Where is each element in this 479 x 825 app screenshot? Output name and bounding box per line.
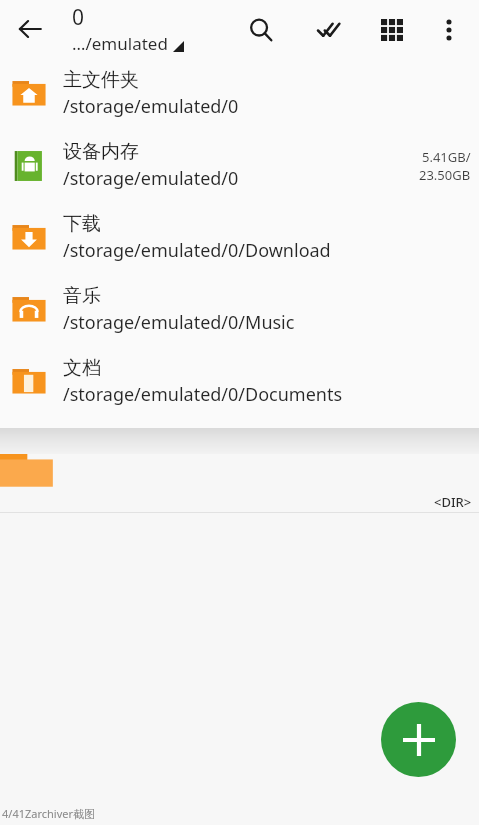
staticText: 360Download bbox=[66, 131, 202, 160]
button[interactable]: 文档 bbox=[0, 356, 479, 428]
button[interactable]: 360gamecentersdk bbox=[0, 253, 479, 318]
staticText: /storage/emulated/0/Documents bbox=[63, 382, 343, 407]
button[interactable]: More options bbox=[428, 9, 470, 51]
staticText: 23.50GB bbox=[419, 166, 471, 184]
staticText: 主文件夹 bbox=[63, 68, 139, 92]
staticText: /storage/emulated/0 bbox=[63, 166, 239, 191]
staticText: 4/41Zarchiver截图 bbox=[2, 806, 96, 821]
staticText: 文档 bbox=[63, 356, 101, 380]
staticText: <DIR> bbox=[434, 428, 472, 446]
button[interactable]: View mode bbox=[371, 9, 413, 51]
staticText: /storage/emulated/0/Download bbox=[63, 238, 331, 263]
staticText: 下载 bbox=[63, 212, 101, 236]
button[interactable]: 音乐 bbox=[0, 284, 479, 356]
staticText: 0 bbox=[72, 3, 85, 32]
staticText: …/emulated bbox=[72, 32, 168, 55]
staticText: 5.41GB/ bbox=[422, 148, 471, 166]
staticText: <DIR> bbox=[434, 168, 472, 186]
button[interactable]: 360freewifi bbox=[0, 188, 479, 253]
staticText: <DIR> bbox=[434, 493, 472, 511]
button[interactable]: Back bbox=[10, 9, 50, 49]
button[interactable]: 设备内存 bbox=[0, 140, 479, 212]
staticText: 360gamecentersdk bbox=[66, 261, 256, 290]
button[interactable]: 下载 bbox=[0, 212, 479, 284]
staticText: /storage/emulated/0 bbox=[63, 94, 239, 119]
button[interactable]: 360Download bbox=[0, 123, 479, 188]
staticText: 6677Game bbox=[66, 391, 173, 420]
button[interactable]: <DIR> bbox=[0, 448, 479, 513]
button[interactable]: 0 bbox=[72, 3, 184, 55]
staticText: 4399MCPE bbox=[66, 326, 171, 355]
button[interactable]: Add bbox=[381, 702, 456, 777]
staticText: /storage/emulated/0/Music bbox=[63, 310, 295, 335]
button[interactable]: Select all bbox=[309, 9, 351, 51]
staticText: 360freewifi bbox=[66, 196, 176, 225]
button[interactable]: Search bbox=[240, 9, 282, 51]
button[interactable]: <DIR> bbox=[0, 58, 479, 123]
button[interactable]: 主文件夹 bbox=[0, 68, 479, 140]
staticText: 音乐 bbox=[63, 284, 101, 308]
button[interactable]: 4399MCPE bbox=[0, 318, 479, 383]
staticText: 设备内存 bbox=[63, 140, 139, 164]
button[interactable]: 6677Game bbox=[0, 383, 479, 448]
